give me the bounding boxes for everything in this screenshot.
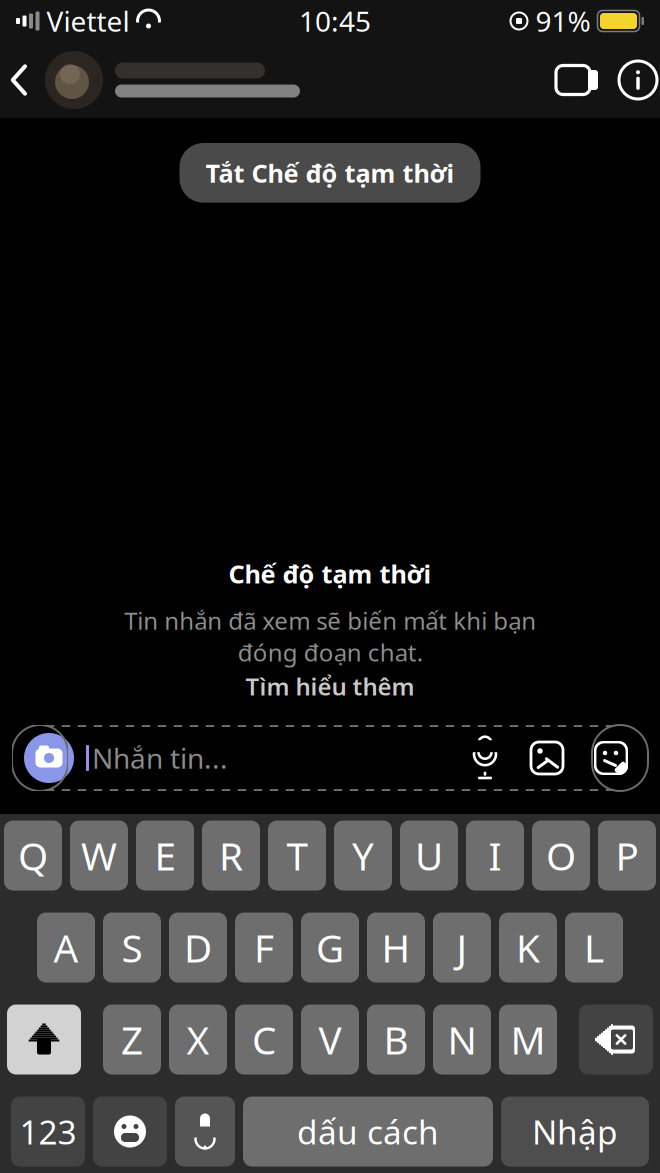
button[interactable]: F (235, 912, 293, 982)
staticText: O (546, 830, 576, 881)
button[interactable]: Nhập (501, 1096, 649, 1166)
button[interactable]: D (169, 912, 227, 982)
staticText: 123 (19, 1109, 76, 1154)
staticText: E (154, 830, 175, 881)
button[interactable]: G (301, 912, 359, 982)
button[interactable]: Profile (45, 42, 317, 118)
button[interactable]: Dictation (175, 1096, 235, 1166)
button[interactable]: M (499, 1004, 557, 1074)
button[interactable]: Emoji (93, 1096, 167, 1166)
staticText: M (510, 1014, 545, 1065)
staticText: Chế độ tạm thời (228, 557, 431, 590)
staticText: W (81, 830, 117, 881)
staticText: P (615, 830, 638, 881)
staticText: R (219, 830, 243, 881)
staticText: Nhắn tin... (92, 739, 228, 777)
staticText: V (318, 1014, 341, 1065)
staticText: U (415, 830, 443, 881)
staticText: T (286, 830, 307, 881)
staticText: J (456, 922, 467, 973)
staticText: Y (352, 830, 374, 881)
button[interactable]: A (37, 912, 95, 982)
staticText: N (447, 1014, 476, 1065)
button[interactable]: E (136, 820, 194, 890)
staticText: D (184, 922, 212, 973)
button[interactable]: L (565, 912, 623, 982)
button[interactable]: Conversation info (609, 52, 660, 108)
staticText: Viettel (46, 2, 129, 40)
button[interactable]: Back (0, 52, 45, 108)
button[interactable]: Tìm hiểu thêm (245, 670, 414, 702)
button[interactable]: Tắt Chế độ tạm thời (179, 143, 480, 203)
staticText: A (53, 922, 78, 973)
button[interactable]: Video call (547, 52, 609, 108)
button[interactable]: Z (103, 1004, 161, 1074)
staticText: Q (18, 830, 48, 881)
button[interactable]: Voice message (468, 738, 502, 778)
staticText: Tắt Chế độ tạm thời (205, 156, 454, 190)
button[interactable]: P (598, 820, 656, 890)
staticText: 91% (535, 2, 590, 40)
staticText: 10:45 (299, 2, 371, 40)
button[interactable]: dấu cách (243, 1096, 493, 1166)
staticText: H (381, 922, 410, 973)
staticText: K (516, 922, 540, 973)
staticText: X (186, 1014, 209, 1065)
staticText: L (584, 922, 604, 973)
button[interactable]: V (301, 1004, 359, 1074)
staticText: G (316, 922, 344, 973)
button[interactable]: J (433, 912, 491, 982)
staticText: I (488, 830, 501, 881)
button[interactable]: I (466, 820, 524, 890)
staticText: dấu cách (297, 1109, 439, 1154)
button[interactable]: S (103, 912, 161, 982)
button[interactable]: U (400, 820, 458, 890)
button[interactable]: N (433, 1004, 491, 1074)
staticText: F (254, 922, 274, 973)
staticText: S (121, 922, 142, 973)
button[interactable]: Q (4, 820, 62, 890)
button[interactable]: K (499, 912, 557, 982)
staticText: B (383, 1014, 408, 1065)
button[interactable]: Delete (579, 1004, 653, 1074)
staticText: C (252, 1014, 276, 1065)
button[interactable]: R (202, 820, 260, 890)
button[interactable]: X (169, 1004, 227, 1074)
button[interactable]: Camera (24, 733, 74, 783)
button[interactable]: Y (334, 820, 392, 890)
staticText: Tìm hiểu thêm (245, 670, 414, 702)
button[interactable]: B (367, 1004, 425, 1074)
button[interactable]: Shift (7, 1004, 81, 1074)
button[interactable]: Numbers (11, 1096, 85, 1166)
button[interactable]: Stickers (592, 738, 630, 778)
button[interactable]: H (367, 912, 425, 982)
staticText: Nhập (532, 1109, 618, 1154)
button[interactable]: O (532, 820, 590, 890)
button[interactable]: T (268, 820, 326, 890)
button[interactable]: C (235, 1004, 293, 1074)
button[interactable]: W (70, 820, 128, 890)
button[interactable]: Photos (528, 738, 566, 778)
staticText: Tin nhắn đã xem sẽ biến mất khi bạn đóng… (124, 604, 536, 668)
staticText: Z (121, 1014, 143, 1065)
